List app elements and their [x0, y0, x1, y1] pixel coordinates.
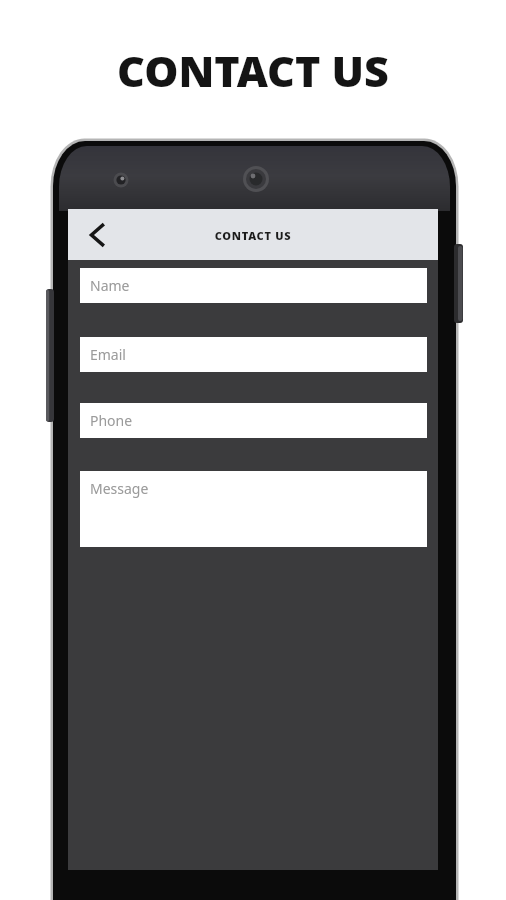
staticText: CONTACT US — [68, 228, 438, 243]
staticText: Name — [90, 276, 130, 295]
button[interactable]: Name — [80, 268, 427, 303]
button[interactable]: Back — [79, 217, 115, 253]
button[interactable]: Email — [80, 337, 427, 372]
staticText: Phone — [90, 411, 133, 430]
staticText: Message — [90, 479, 149, 498]
staticText: Email — [90, 345, 126, 364]
button[interactable]: Message — [80, 471, 427, 547]
staticText: CONTACT US — [0, 41, 506, 100]
button[interactable]: Phone — [80, 403, 427, 438]
